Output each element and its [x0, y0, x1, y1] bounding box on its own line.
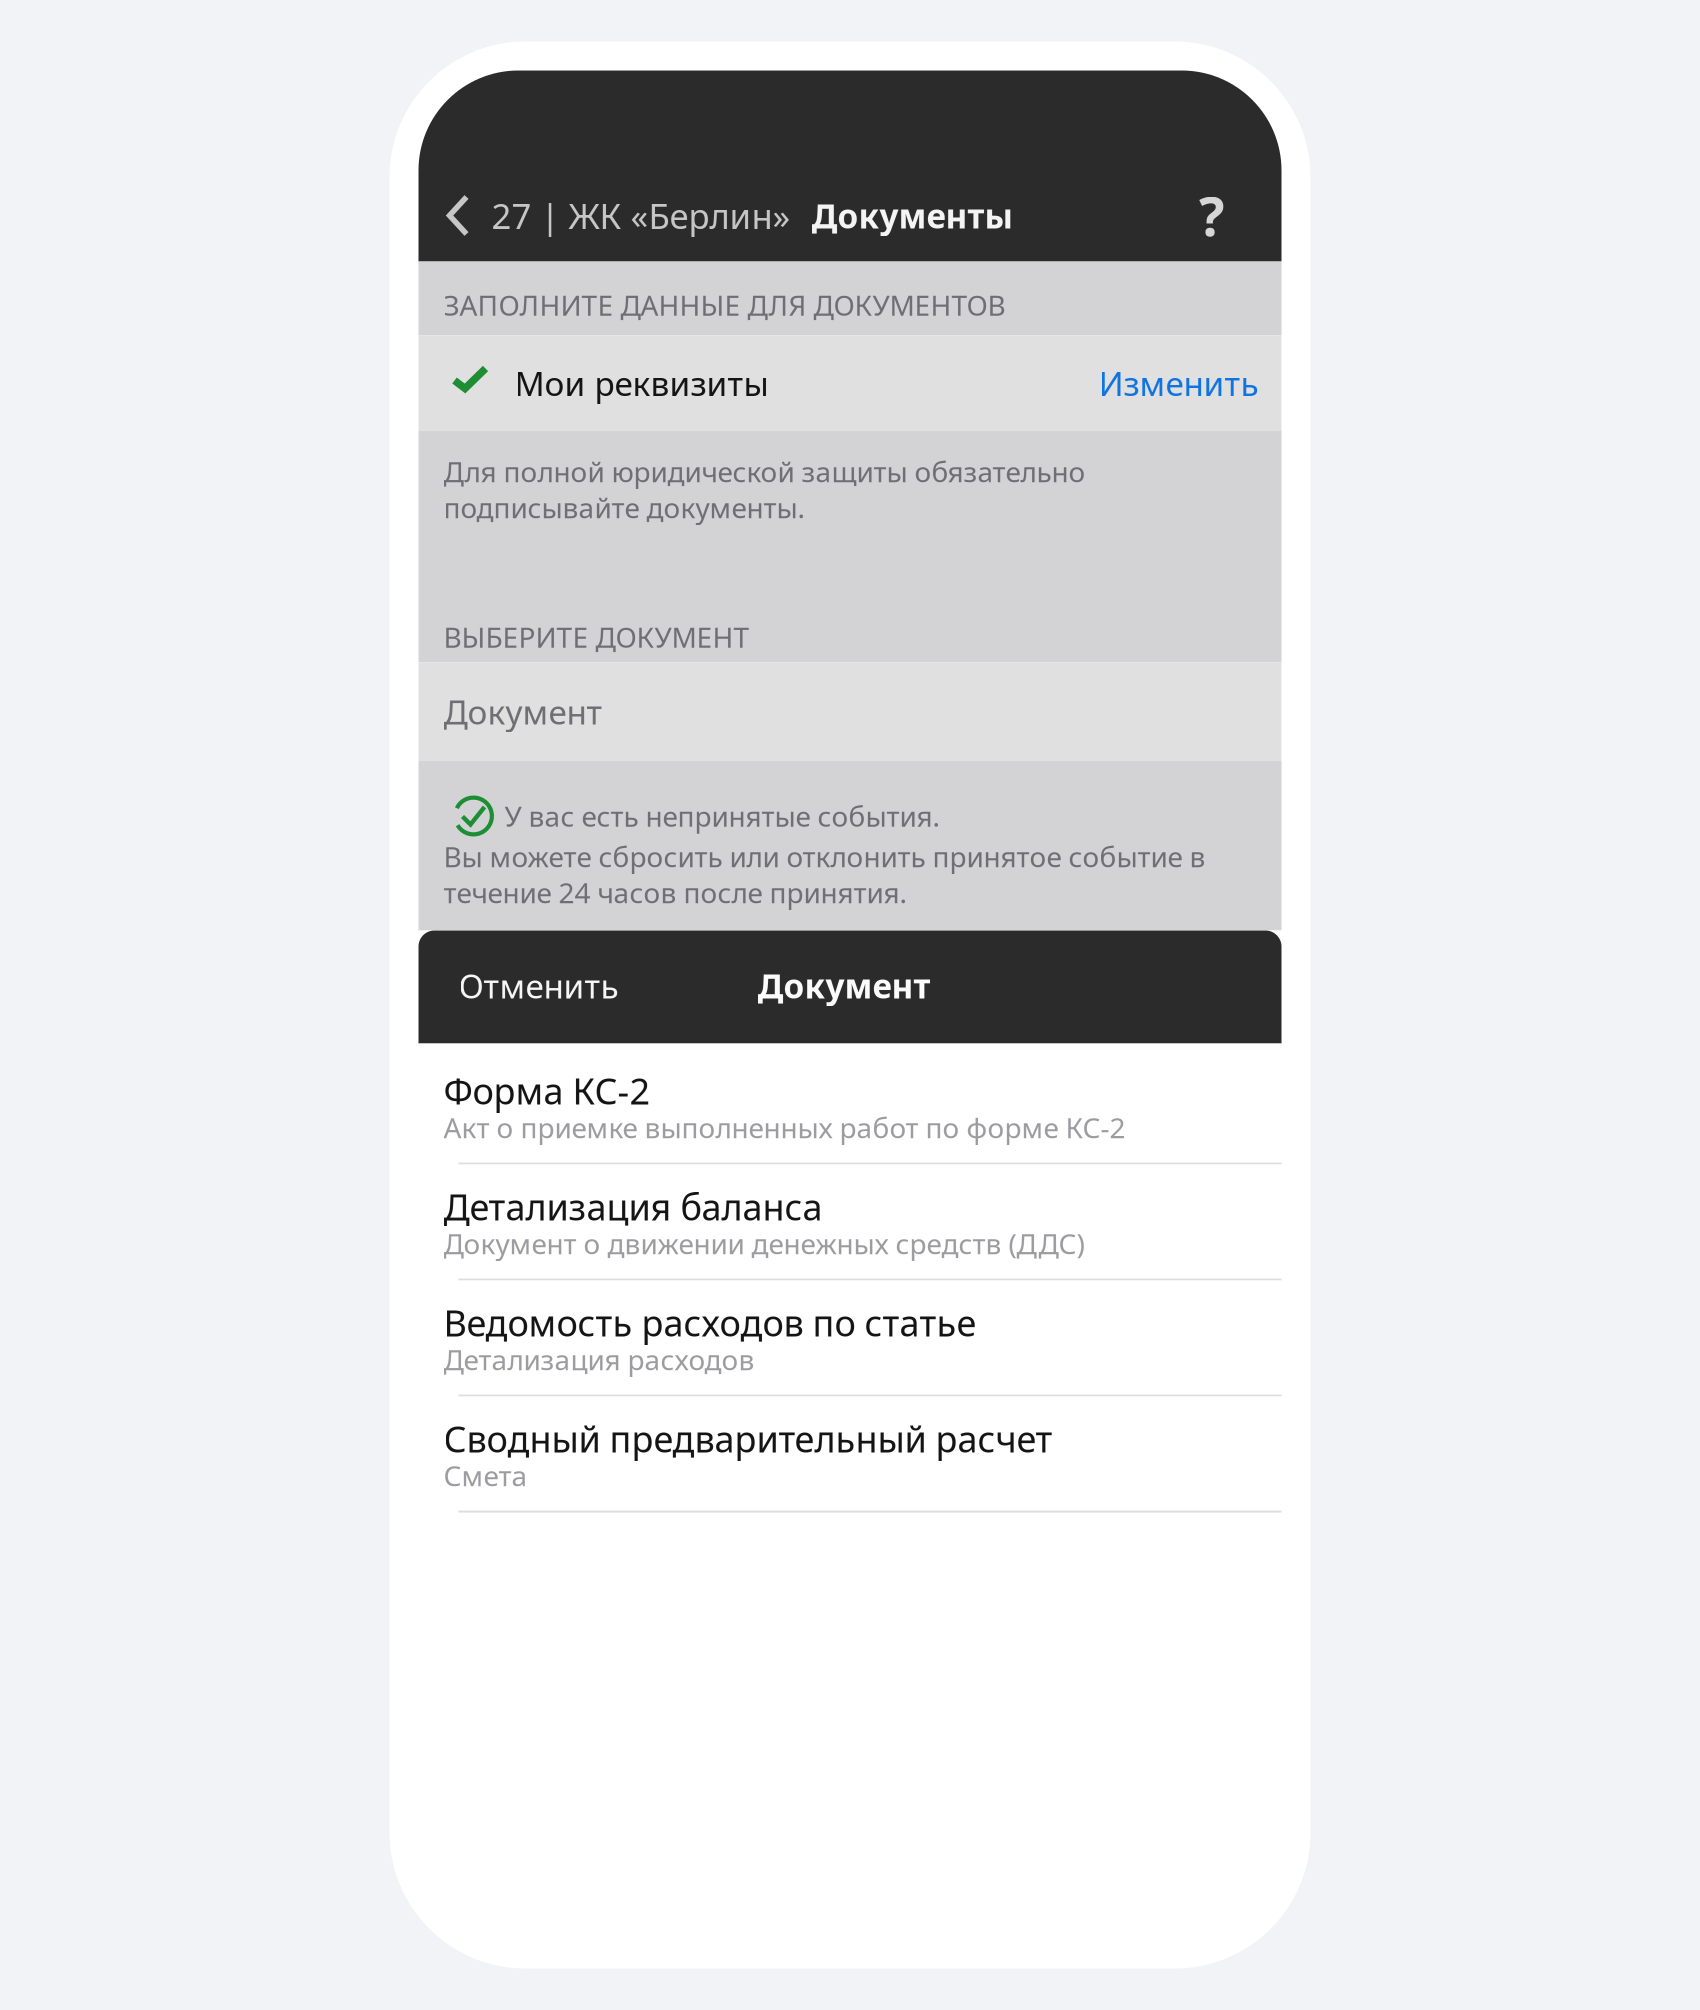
staticText: У вас есть непринятые события. [504, 797, 940, 835]
staticText: ВЫБЕРИТЕ ДОКУМЕНТ [443, 618, 749, 655]
button[interactable]: Справка [1175, 178, 1247, 252]
button[interactable]: Документ [418, 662, 1281, 760]
staticText: Акт о приемке выполненных работ по форме… [443, 1109, 1125, 1146]
button[interactable]: Детализация баланса [418, 1164, 1281, 1280]
staticText: ЗАПОЛНИТЕ ДАННЫЕ ДЛЯ ДОКУМЕНТОВ [443, 286, 1005, 323]
staticText: Детализация расходов [443, 1341, 754, 1378]
staticText: Изменить [1098, 361, 1258, 405]
staticText: течение 24 часов после принятия. [443, 874, 907, 911]
button[interactable]: 27 | ЖК «Берлин» [418, 178, 794, 252]
staticText: Мои реквизиты [514, 361, 768, 405]
staticText: Сводный предварительный расчет [443, 1415, 1052, 1462]
button[interactable]: Сводный предварительный расчет [418, 1396, 1281, 1512]
staticText: Документ о движении денежных средств (ДД… [443, 1225, 1084, 1262]
button[interactable]: Отменить [418, 950, 618, 1020]
button[interactable]: Мои реквизиты [418, 335, 1281, 430]
staticText: Вы можете сбросить или отклонить принято… [443, 838, 1205, 875]
staticText: Отменить [458, 963, 618, 1008]
staticText: Форма КС-2 [443, 1067, 650, 1114]
staticText: Документы [811, 193, 1012, 238]
staticText: ? [1199, 180, 1224, 251]
staticText: Ведомость расходов по статье [443, 1299, 976, 1346]
button[interactable]: Ведомость расходов по статье [418, 1280, 1281, 1396]
button[interactable]: Форма КС-2 [418, 1048, 1281, 1164]
staticText: Смета [443, 1457, 527, 1494]
staticText: подписывайте документы. [443, 489, 805, 526]
staticText: 27 | ЖК «Берлин» [491, 192, 790, 238]
staticText: Детализация баланса [443, 1183, 822, 1230]
staticText: Документ [443, 689, 602, 734]
staticText: Для полной юридической защиты обязательн… [443, 453, 1085, 490]
staticText: Документ [757, 963, 930, 1008]
